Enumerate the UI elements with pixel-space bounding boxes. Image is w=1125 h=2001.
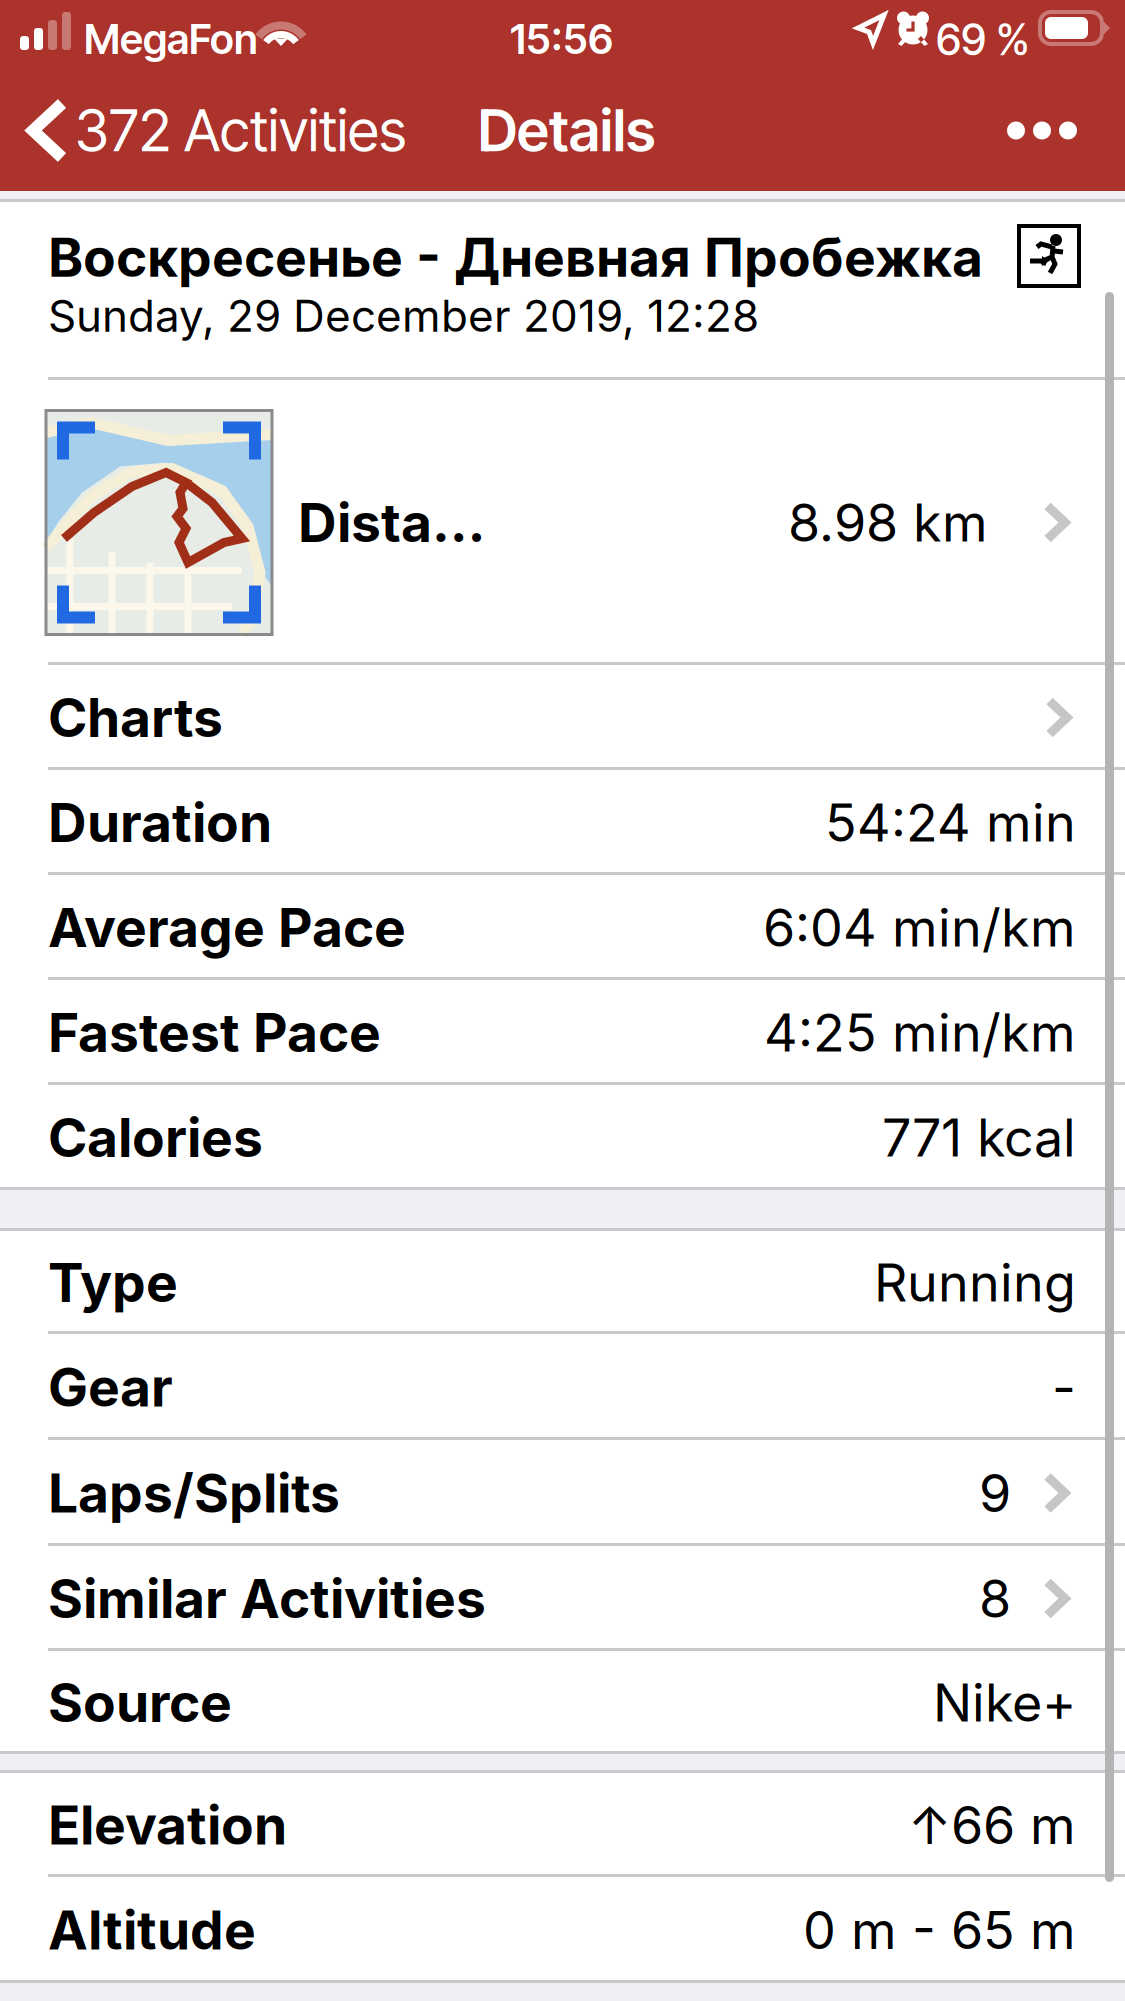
staticText: Dista… [298,490,485,555]
staticText: Fastest Pace [48,1000,381,1065]
staticText: Running [874,1251,1076,1314]
staticText: Воскресенье - Дневная Пробежка [48,225,983,289]
staticText: Sunday, 29 December 2019, 12:28 [48,289,759,342]
staticText: ↑66 m [908,1793,1076,1856]
staticText: Average Pace [48,895,406,960]
button[interactable]: Type [0,1231,1125,1334]
staticText: 69 % [936,14,1030,66]
staticText: 372 Activities [75,96,406,165]
button[interactable]: Altitude [0,1877,1125,1983]
staticText: 6:04 min/km [763,896,1076,959]
staticText: MegaFon [84,14,258,64]
button[interactable]: Calories [0,1085,1125,1190]
staticText: Elevation [48,1793,287,1857]
staticText: Similar Activities [48,1566,486,1631]
button[interactable]: Laps/Splits [0,1440,1125,1546]
button[interactable]: Dista… [0,380,1125,665]
staticText: 15:56 [510,14,613,64]
staticText: Charts [48,685,223,750]
button[interactable]: Elevation [0,1773,1125,1877]
button[interactable]: Source [0,1651,1125,1754]
button[interactable]: Charts [0,665,1125,770]
button[interactable]: Duration [0,770,1125,875]
button[interactable]: Gear [0,1334,1125,1440]
staticText: Details [478,96,655,165]
staticText: Gear [48,1355,173,1419]
button[interactable]: More options [980,70,1104,191]
staticText: Laps/Splits [48,1461,340,1525]
staticText: Calories [48,1105,263,1170]
button[interactable]: Similar Activities [0,1546,1125,1651]
button[interactable]: 372 Activities [0,70,411,191]
staticText: Nike+ [933,1671,1076,1734]
staticText: Type [48,1250,178,1315]
staticText: 8.98 km [788,491,988,554]
staticText: - [1052,1355,1076,1418]
staticText: 0 m - 65 m [803,1898,1076,1961]
staticText: 4:25 min/km [764,1001,1076,1064]
button[interactable]: Average Pace [0,875,1125,980]
staticText: 9 [979,1461,1011,1524]
button[interactable]: Fastest Pace [0,980,1125,1085]
staticText: 771 kcal [882,1106,1076,1169]
staticText: 54:24 min [825,791,1076,854]
staticText: Duration [48,790,272,855]
staticText: 8 [979,1567,1011,1630]
staticText: Source [48,1670,232,1735]
staticText: Altitude [48,1898,256,1962]
